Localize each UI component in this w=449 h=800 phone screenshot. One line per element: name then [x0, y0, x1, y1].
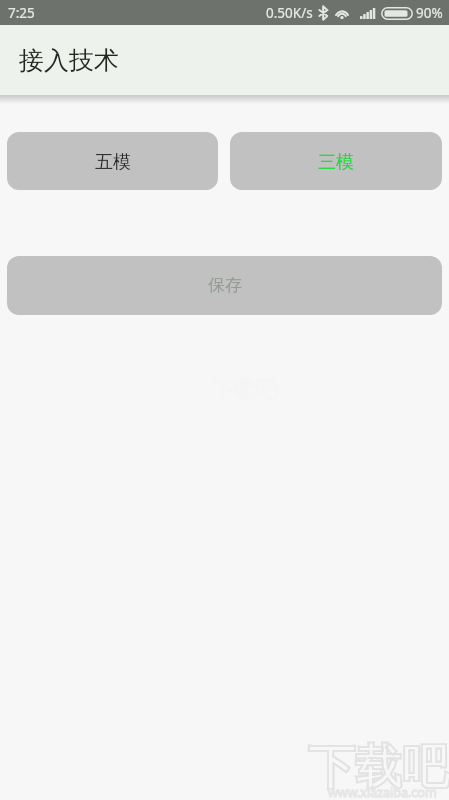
staticText: 保存: [208, 275, 242, 296]
button[interactable]: 三模: [230, 132, 442, 190]
button[interactable]: 五模: [7, 132, 218, 190]
staticText: 五模: [95, 151, 131, 174]
staticText: 下载吧: [308, 738, 449, 797]
staticText: www.xiazaiba.com: [328, 784, 437, 800]
staticText: 接入技术: [19, 45, 119, 76]
staticText: 7:25: [8, 4, 35, 22]
staticText: 90%: [416, 4, 443, 22]
staticText: 三模: [318, 151, 354, 174]
button[interactable]: 保存: [7, 256, 442, 315]
staticText: 0.50K/s: [266, 4, 313, 22]
